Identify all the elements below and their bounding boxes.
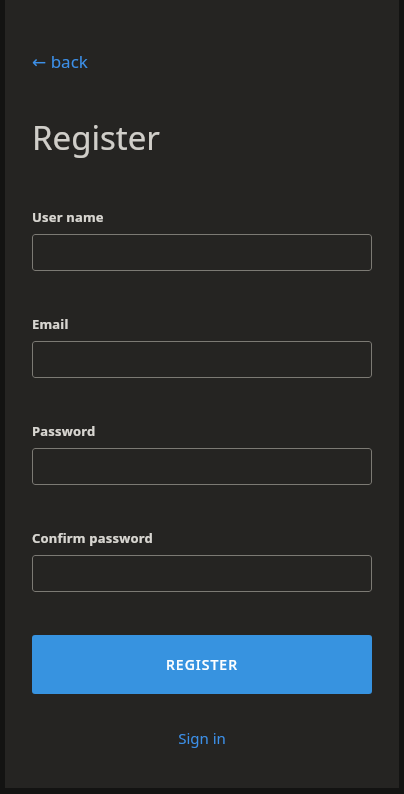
button[interactable]	[32, 555, 372, 592]
staticText: Email	[32, 315, 69, 333]
button[interactable]: REGISTER	[32, 635, 372, 694]
button[interactable]: ← back	[32, 50, 88, 73]
button[interactable]: Sign in	[170, 724, 234, 752]
staticText: REGISTER	[166, 655, 238, 674]
button[interactable]	[32, 448, 372, 485]
button[interactable]	[32, 341, 372, 378]
staticText: User name	[32, 208, 104, 226]
button[interactable]	[32, 234, 372, 271]
staticText: Register	[32, 115, 160, 160]
staticText: ← back	[32, 50, 88, 73]
staticText: Password	[32, 422, 96, 440]
staticText: Confirm password	[32, 529, 153, 547]
